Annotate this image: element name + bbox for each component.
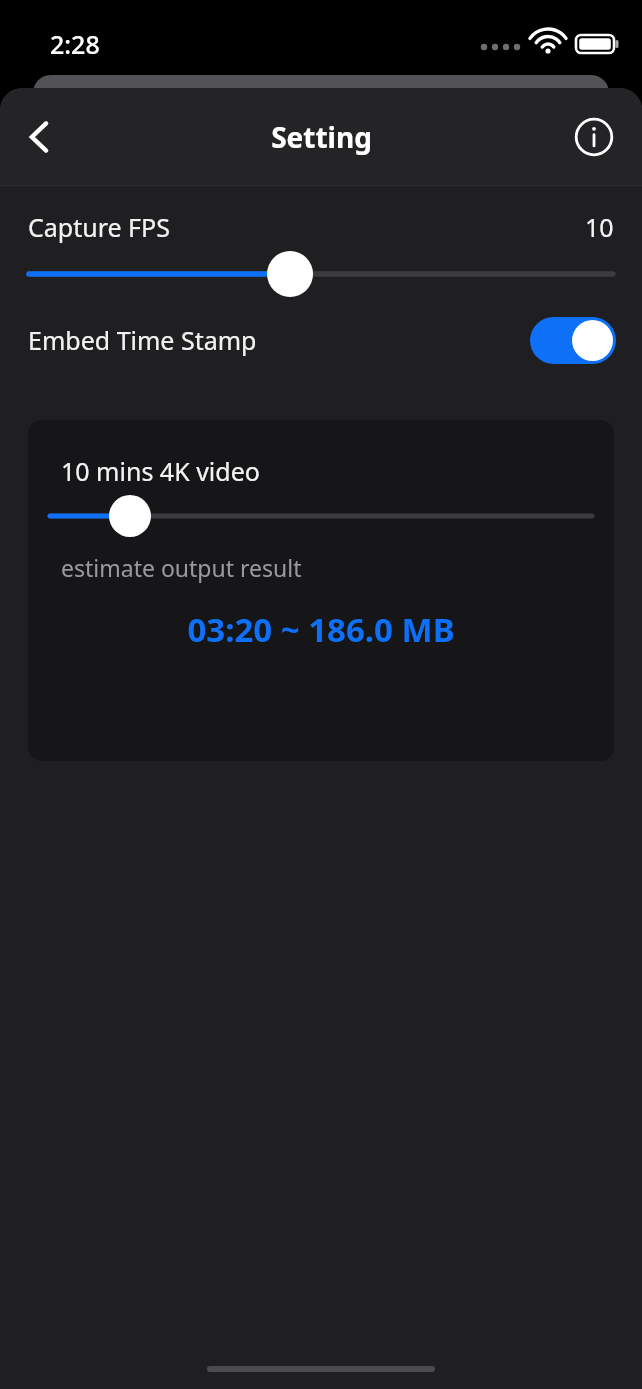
button[interactable]: Embed Time Stamp xyxy=(28,304,616,376)
button[interactable]: Back xyxy=(12,109,68,165)
staticText: estimate output result xyxy=(61,552,302,583)
button[interactable] xyxy=(29,244,613,304)
button[interactable]: Information xyxy=(568,111,620,163)
staticText: 10 mins 4K video xyxy=(61,454,260,488)
staticText: Capture FPS xyxy=(28,210,170,244)
staticText: 03:20 ~ 186.0 MB xyxy=(28,607,614,652)
button[interactable]: 10 mins 4K video xyxy=(28,420,614,761)
staticText: Setting xyxy=(271,118,372,156)
staticText: 10 xyxy=(585,210,614,244)
button[interactable]: Capture FPS xyxy=(28,210,614,244)
staticText: 2:28 xyxy=(50,27,100,61)
staticText: Embed Time Stamp xyxy=(28,323,257,357)
